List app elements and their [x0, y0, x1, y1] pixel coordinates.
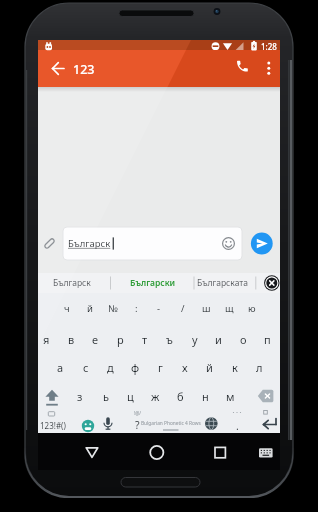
button[interactable]: л [248, 354, 271, 381]
button[interactable]: м [219, 383, 242, 410]
button[interactable] [40, 232, 60, 256]
staticText: Bulgarian Phonetic 4 Rows [141, 420, 201, 427]
staticText: 123 [73, 61, 95, 78]
button[interactable]: й [198, 354, 221, 381]
staticText: ж [151, 389, 160, 404]
button[interactable] [44, 56, 70, 82]
button[interactable]: Българск [37, 274, 107, 292]
button[interactable] [256, 384, 278, 408]
button[interactable]: н [194, 383, 217, 410]
button[interactable]: ф [124, 354, 147, 381]
button[interactable]: ? [127, 412, 147, 438]
button[interactable]: г [149, 354, 172, 381]
staticText: ф [131, 360, 140, 375]
staticText: № [108, 302, 118, 315]
button[interactable] [98, 414, 119, 438]
staticText: м [226, 389, 235, 404]
button[interactable]: б [169, 383, 192, 410]
button[interactable]: й [79, 295, 101, 321]
button[interactable]: и [207, 326, 230, 353]
staticText: в [68, 332, 75, 347]
staticText: 123!#() [40, 420, 66, 431]
staticText: у [192, 332, 198, 347]
staticText: л [256, 360, 263, 375]
staticText: Българск [53, 277, 91, 289]
staticText: н [202, 389, 209, 404]
staticText: д [107, 360, 114, 375]
button[interactable] [250, 232, 274, 256]
staticText: : [135, 302, 138, 315]
button[interactable]: Български [113, 274, 193, 292]
button[interactable]: . [229, 413, 245, 439]
button[interactable]: т [133, 326, 156, 353]
button[interactable]: ь [94, 383, 117, 410]
button[interactable] [40, 384, 64, 408]
staticText: ш [202, 302, 211, 315]
button[interactable] [78, 414, 99, 438]
button[interactable] [258, 412, 282, 436]
staticText: и [215, 332, 222, 347]
staticText: г [158, 360, 163, 375]
staticText: а [57, 360, 64, 375]
staticText: ъ [166, 332, 173, 347]
staticText: я [43, 332, 50, 347]
staticText: т [142, 332, 148, 347]
staticText: е [92, 332, 99, 347]
staticText: . [236, 419, 239, 433]
staticText: х [182, 360, 188, 375]
button[interactable]: - [148, 295, 170, 321]
button[interactable] [143, 443, 171, 463]
button[interactable] [78, 443, 106, 463]
staticText: - [157, 302, 161, 315]
button[interactable]: ю [241, 295, 263, 321]
button[interactable]: п [256, 326, 279, 353]
staticText: Българск [68, 237, 111, 250]
button[interactable] [263, 274, 280, 292]
button[interactable]: с [74, 354, 97, 381]
button[interactable]: о [232, 326, 255, 353]
staticText: р [117, 332, 124, 347]
button[interactable] [148, 412, 194, 434]
staticText: к [232, 360, 238, 375]
staticText: 1:28 [261, 41, 277, 52]
staticText: / [181, 302, 185, 315]
staticText: Българската [197, 277, 248, 289]
button[interactable]: д [99, 354, 122, 381]
button[interactable]: : [125, 295, 147, 321]
staticText: щ [225, 302, 234, 315]
staticText: ч [64, 302, 70, 315]
button[interactable]: ц [119, 383, 142, 410]
button[interactable] [252, 443, 278, 463]
button[interactable]: ш [195, 295, 217, 321]
staticText: ? [135, 418, 140, 432]
button[interactable]: к [223, 354, 246, 381]
button[interactable]: з [68, 383, 91, 410]
button[interactable]: Българската [191, 274, 253, 292]
button[interactable] [63, 227, 242, 260]
staticText: п [264, 332, 271, 347]
button[interactable] [200, 412, 222, 435]
staticText: с [83, 360, 89, 375]
button[interactable] [258, 56, 278, 82]
staticText: з [77, 389, 83, 404]
button[interactable]: ж [144, 383, 167, 410]
button[interactable]: е [84, 326, 107, 353]
button[interactable]: № [102, 295, 124, 321]
button[interactable] [231, 56, 255, 82]
button[interactable]: у [183, 326, 206, 353]
button[interactable]: щ [218, 295, 240, 321]
button[interactable]: ч [56, 295, 78, 321]
button[interactable]: ъ [158, 326, 181, 353]
button[interactable]: в [60, 326, 83, 353]
button[interactable]: р [109, 326, 132, 353]
button[interactable]: я [35, 326, 58, 353]
staticText: ь [103, 389, 109, 404]
button[interactable]: / [172, 295, 194, 321]
button[interactable] [206, 443, 234, 463]
staticText: Български [130, 277, 176, 289]
button[interactable]: х [173, 354, 196, 381]
button[interactable]: 123!#() [35, 412, 71, 438]
staticText: й [206, 360, 213, 375]
staticText: й [87, 302, 93, 315]
button[interactable]: а [49, 354, 72, 381]
